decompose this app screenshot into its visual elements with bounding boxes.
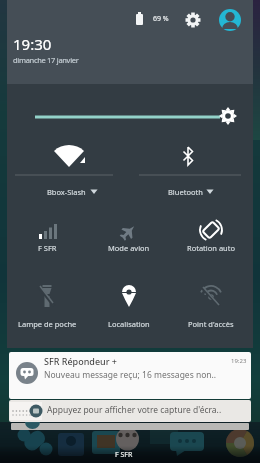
staticText: Mode avion	[108, 243, 150, 253]
staticText: 69 %	[153, 14, 169, 24]
staticText: dimanche 17 janvier	[13, 55, 79, 65]
button[interactable]	[10, 140, 130, 200]
staticText: Point d'accès	[188, 319, 234, 329]
button[interactable]	[132, 140, 250, 200]
staticText: Nouveau message reçu; 16 messages non..	[44, 369, 217, 381]
button[interactable]	[9, 352, 251, 399]
button[interactable]	[10, 284, 90, 329]
staticText: Bluetooth	[168, 187, 203, 197]
button[interactable]	[219, 9, 241, 31]
button[interactable]	[9, 400, 251, 422]
staticText: SFR Répondeur +	[44, 355, 117, 367]
staticText: 19:23	[231, 357, 247, 365]
button[interactable]	[172, 284, 250, 329]
staticText: Lampe de poche	[18, 319, 77, 329]
button[interactable]	[92, 214, 170, 259]
button[interactable]	[10, 214, 90, 259]
staticText: F SFR	[38, 243, 57, 253]
staticText: Bbox-Slash	[47, 187, 86, 197]
button[interactable]	[11, 423, 249, 430]
staticText: 19:30	[13, 34, 52, 54]
button[interactable]	[172, 214, 250, 259]
button[interactable]	[185, 11, 203, 29]
staticText: F SFR	[115, 450, 133, 460]
staticText: Localisation	[108, 319, 150, 329]
staticText: Appuyez pour afficher votre capture d'éc…	[47, 404, 222, 416]
staticText: Rotation auto	[187, 243, 235, 253]
button[interactable]	[92, 284, 170, 329]
